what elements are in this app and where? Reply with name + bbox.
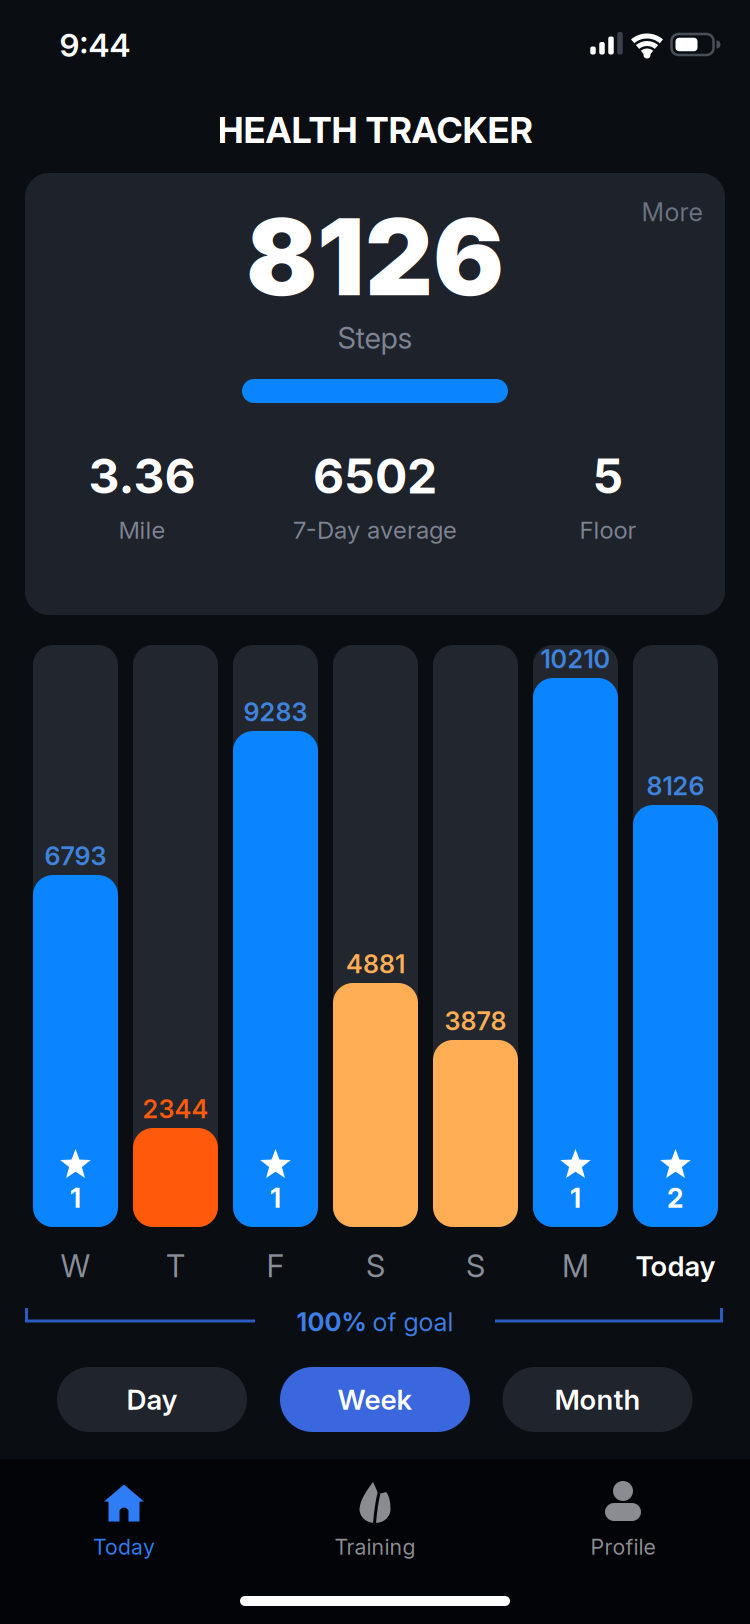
button[interactable]: Training xyxy=(260,1460,490,1600)
staticText: 9283 xyxy=(243,697,307,727)
staticText: S xyxy=(466,1248,485,1284)
staticText: W xyxy=(60,1248,90,1284)
staticText: More xyxy=(641,197,702,227)
staticText: Today xyxy=(635,1249,715,1282)
staticText: Week xyxy=(337,1383,412,1416)
staticText: S xyxy=(366,1248,385,1284)
button[interactable]: Week xyxy=(280,1367,470,1432)
staticText: Profile xyxy=(590,1534,655,1560)
staticText: Training xyxy=(334,1534,415,1560)
staticText: Month xyxy=(554,1383,640,1416)
staticText: 8126 xyxy=(646,771,704,801)
staticText: Floor xyxy=(579,516,636,544)
staticText: 5 xyxy=(592,448,623,504)
staticText: Mile xyxy=(118,516,165,544)
staticText: M xyxy=(562,1248,589,1284)
staticText: Today xyxy=(93,1534,155,1560)
staticText: 1 xyxy=(270,1182,281,1214)
button[interactable]: Today xyxy=(9,1460,239,1600)
staticText: 6502 xyxy=(313,448,437,504)
staticText: 6793 xyxy=(44,841,106,871)
staticText: 10210 xyxy=(540,644,610,674)
staticText: Steps xyxy=(337,321,412,355)
staticText: T xyxy=(166,1248,185,1284)
staticText: HEALTH TRACKER xyxy=(217,109,532,151)
staticText: 8126 xyxy=(246,195,504,319)
staticText: 2 xyxy=(667,1182,684,1214)
staticText: 7-Day average xyxy=(293,516,457,544)
button[interactable]: Month xyxy=(502,1367,692,1432)
staticText: F xyxy=(266,1248,284,1284)
staticText: 9:44 xyxy=(59,26,130,64)
staticText: 100% xyxy=(296,1307,366,1337)
staticText: of goal xyxy=(372,1307,453,1337)
staticText: 1 xyxy=(570,1182,581,1214)
staticText: 1 xyxy=(70,1182,81,1214)
button[interactable]: More xyxy=(641,197,702,227)
staticText: 4881 xyxy=(346,949,405,979)
button[interactable]: Profile xyxy=(508,1460,738,1600)
staticText: Day xyxy=(126,1383,177,1416)
staticText: 3878 xyxy=(444,1006,506,1036)
button[interactable]: Day xyxy=(57,1367,247,1432)
staticText: 2344 xyxy=(142,1094,208,1124)
staticText: 3.36 xyxy=(88,448,195,504)
